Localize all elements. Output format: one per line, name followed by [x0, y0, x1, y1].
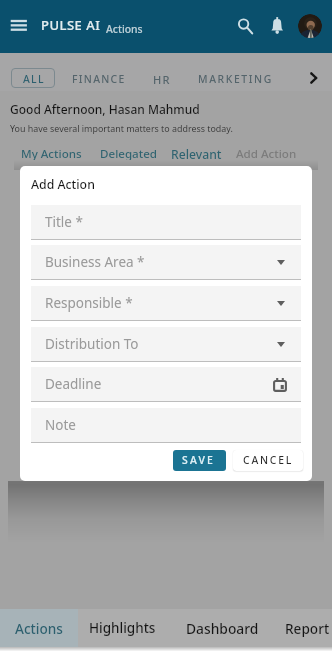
button[interactable]: Dashboard — [165, 609, 259, 647]
staticText: Relevant — [171, 146, 222, 163]
button[interactable]: MARKETING — [198, 72, 273, 86]
button[interactable]: Responsible * — [31, 286, 301, 320]
button[interactable]: Distribution To — [31, 327, 301, 361]
button[interactable]: Highlights — [78, 609, 165, 647]
button[interactable]: FINANCE — [72, 72, 126, 86]
button[interactable]: Delegated — [100, 146, 158, 162]
button[interactable]: CANCEL — [233, 450, 303, 471]
staticText: You have several important matters to ad… — [10, 122, 233, 134]
staticText: Add Action — [236, 146, 297, 162]
staticText: SAVE — [182, 453, 216, 467]
button[interactable]: Search — [231, 12, 257, 38]
button[interactable]: Note — [31, 408, 301, 442]
staticText: Business Area * — [45, 253, 145, 271]
staticText: HR — [153, 72, 171, 87]
button[interactable]: Notifications — [265, 12, 290, 37]
button[interactable]: HR — [153, 72, 171, 87]
staticText: Actions — [106, 22, 143, 36]
button[interactable]: More categories — [303, 67, 325, 89]
staticText: Delegated — [100, 146, 158, 162]
staticText: Distribution To — [45, 335, 139, 353]
staticText: Report — [285, 619, 330, 638]
staticText: CANCEL — [243, 453, 294, 467]
button[interactable]: Actions — [0, 609, 78, 647]
button[interactable]: Relevant — [171, 146, 222, 163]
staticText: ALL — [23, 72, 45, 86]
staticText: MARKETING — [198, 72, 273, 86]
button[interactable]: Title * — [31, 205, 301, 239]
staticText: Title * — [45, 213, 83, 231]
button[interactable]: Deadline — [31, 367, 301, 401]
button[interactable]: Add Action — [236, 146, 297, 162]
button[interactable]: SAVE — [173, 450, 226, 471]
staticText: PULSE AI — [41, 16, 101, 34]
button[interactable]: My Actions — [21, 146, 82, 162]
button[interactable]: Business Area * — [31, 245, 301, 279]
staticText: Add Action — [31, 176, 95, 193]
staticText: FINANCE — [72, 72, 126, 86]
staticText: My Actions — [21, 146, 82, 162]
staticText: Responsible * — [45, 294, 133, 312]
staticText: Highlights — [89, 619, 156, 637]
staticText: Actions — [15, 619, 63, 638]
staticText: Deadline — [45, 375, 102, 393]
button[interactable]: Report — [259, 609, 332, 647]
staticText: Dashboard — [186, 619, 259, 638]
staticText: Note — [45, 416, 76, 434]
button[interactable]: Profile — [298, 14, 322, 38]
button[interactable]: Menu — [4, 9, 33, 38]
button[interactable]: ALL — [11, 68, 55, 88]
staticText: Good Afternoon, Hasan Mahmud — [10, 101, 200, 117]
